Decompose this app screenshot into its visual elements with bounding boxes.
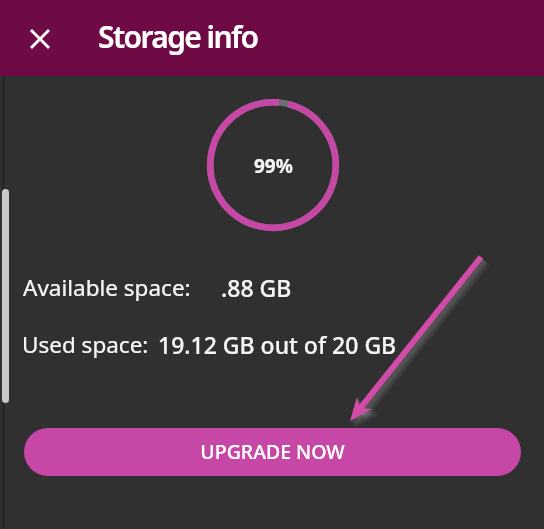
staticText: Available space: (23, 272, 191, 303)
staticText: UPGRADE NOW (200, 438, 345, 465)
staticText: 99% (254, 153, 293, 179)
staticText: .88 GB (221, 272, 292, 303)
staticText: 19.12 GB out of 20 GB (158, 329, 397, 360)
staticText: Storage info (98, 16, 258, 57)
button[interactable]: UPGRADE NOW (24, 428, 521, 476)
button[interactable]: Close (16, 15, 64, 63)
staticText: Used space: (22, 329, 149, 360)
